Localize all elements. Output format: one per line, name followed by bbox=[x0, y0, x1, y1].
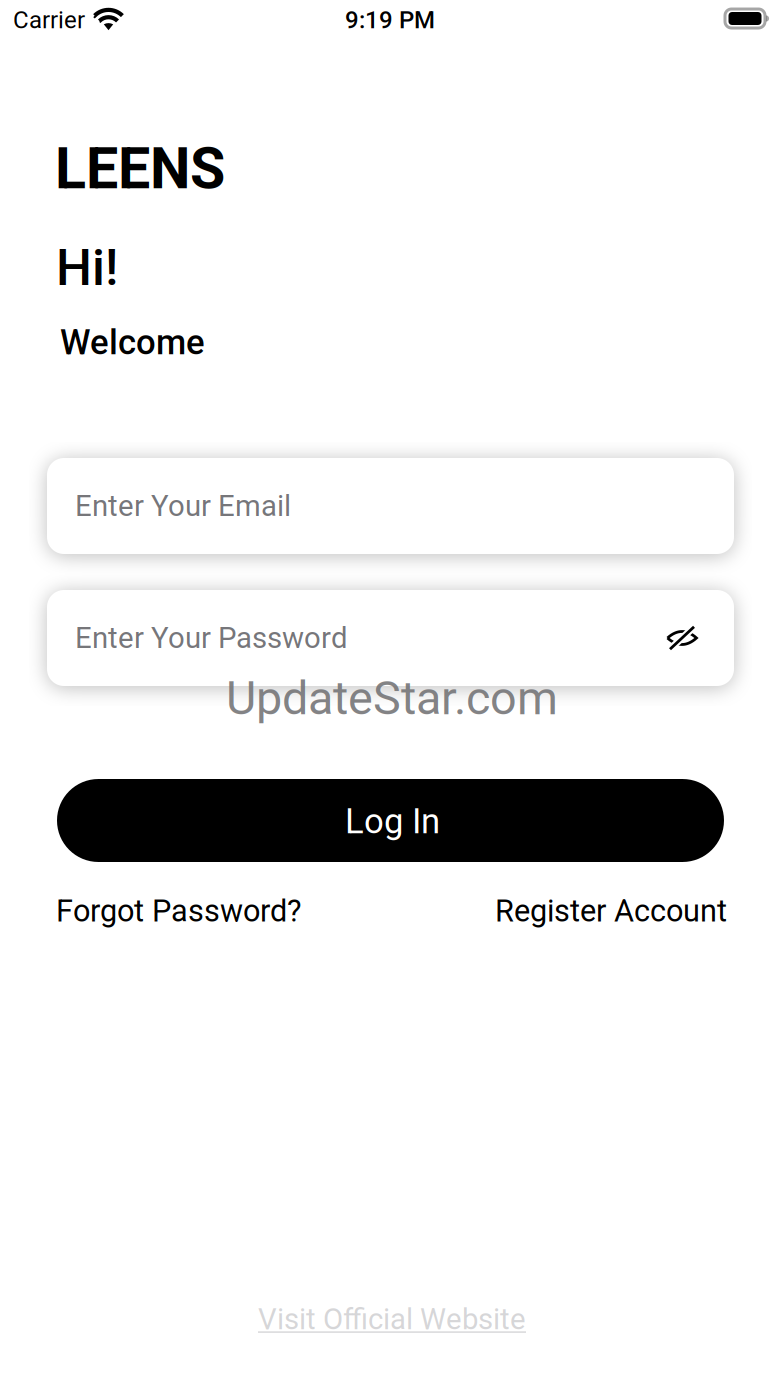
staticText: 9:19 PM bbox=[345, 6, 435, 34]
button[interactable]: Register Account bbox=[495, 893, 727, 929]
staticText: Carrier bbox=[13, 6, 85, 34]
staticText: Register Account bbox=[495, 893, 727, 929]
button[interactable]: Show password bbox=[666, 624, 698, 652]
button[interactable]: Enter Your Password bbox=[75, 590, 666, 686]
button[interactable]: Enter Your Email bbox=[75, 458, 698, 554]
staticText: UpdateStar.com bbox=[226, 671, 558, 726]
button[interactable]: Log In bbox=[57, 779, 724, 862]
staticText: Visit Official Website bbox=[258, 1302, 526, 1336]
staticText: Hi! bbox=[56, 238, 118, 297]
staticText: Welcome bbox=[60, 322, 205, 363]
staticText: Log In bbox=[345, 801, 440, 842]
staticText: Enter Your Email bbox=[75, 489, 291, 523]
staticText: Enter Your Password bbox=[75, 621, 348, 655]
button[interactable]: Visit Official Website bbox=[258, 1302, 526, 1336]
staticText: LEENS bbox=[55, 135, 225, 202]
button[interactable]: Forgot Password? bbox=[56, 893, 301, 929]
staticText: Forgot Password? bbox=[56, 893, 301, 929]
